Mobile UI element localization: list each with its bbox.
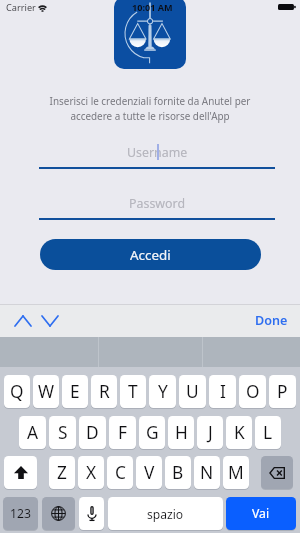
button[interactable]: J [197, 416, 223, 449]
button[interactable]: X [78, 456, 104, 489]
staticText: Accedi [130, 246, 171, 264]
staticText: S [58, 421, 68, 445]
button[interactable]: K [226, 416, 252, 449]
staticText: Password [129, 195, 186, 212]
staticText: Done [255, 312, 288, 329]
button[interactable]: T [120, 375, 146, 408]
staticText: J [208, 421, 213, 445]
staticText: C [115, 461, 126, 485]
button[interactable]: V [136, 456, 162, 489]
button[interactable]: N [194, 456, 220, 489]
button[interactable]: O [239, 375, 266, 408]
staticText: D [86, 421, 99, 445]
staticText: R [99, 380, 110, 404]
staticText: X [86, 461, 97, 485]
staticText: L [263, 421, 273, 445]
button[interactable]: W [33, 375, 59, 408]
button[interactable]: E [62, 375, 88, 408]
staticText: F [118, 421, 127, 445]
button[interactable]: L [255, 416, 281, 449]
button[interactable]: Next field [42, 316, 58, 326]
button[interactable]: U [179, 375, 206, 408]
staticText: Inserisci le credenziali fornite da Anut… [40, 94, 260, 122]
staticText: A [27, 421, 39, 445]
staticText: 123 [10, 505, 31, 522]
staticText: Username [127, 144, 188, 161]
staticText: Z [57, 461, 67, 485]
staticText: 10:01 AM [132, 1, 173, 13]
button[interactable]: I [209, 375, 236, 408]
staticText: V [144, 461, 155, 485]
button[interactable]: Vai [226, 497, 296, 530]
button[interactable]: Username [39, 145, 275, 167]
button[interactable]: Q [4, 375, 30, 408]
button[interactable]: F [109, 416, 136, 449]
staticText: I [220, 380, 226, 404]
button[interactable]: G [139, 416, 165, 449]
staticText: Q [10, 380, 24, 404]
staticText: N [200, 461, 214, 485]
staticText: Carrier [6, 1, 36, 14]
staticText: H [175, 421, 188, 445]
button[interactable]: Backspace [261, 456, 293, 489]
staticText: O [246, 380, 260, 404]
button[interactable]: R [91, 375, 117, 408]
staticText: U [186, 380, 199, 404]
button[interactable]: M [223, 456, 249, 489]
staticText: M [228, 461, 244, 485]
staticText: Vai [252, 505, 270, 522]
button[interactable]: Shift [4, 456, 37, 489]
staticText: E [70, 380, 80, 404]
button[interactable]: Done [255, 312, 288, 329]
staticText: Y [158, 380, 168, 404]
staticText: T [128, 380, 138, 404]
button[interactable]: P [269, 375, 296, 408]
button[interactable]: Change keyboard [42, 497, 75, 530]
button[interactable]: Accedi [40, 239, 261, 270]
staticText: W [38, 380, 55, 404]
button[interactable]: Z [49, 456, 75, 489]
button[interactable]: C [107, 456, 133, 489]
staticText: P [277, 380, 288, 404]
button[interactable]: Password [39, 196, 275, 218]
button[interactable]: Y [149, 375, 176, 408]
staticText: K [234, 421, 245, 445]
button[interactable]: A [19, 416, 46, 449]
button[interactable]: 123 [3, 497, 38, 530]
button[interactable]: Previous field [15, 316, 31, 326]
button[interactable]: H [168, 416, 194, 449]
button[interactable]: D [79, 416, 106, 449]
staticText: B [172, 461, 184, 485]
staticText: spazio [147, 506, 184, 522]
staticText: G [146, 421, 159, 445]
button[interactable]: Dictation [79, 497, 104, 530]
button[interactable]: spazio [108, 497, 223, 530]
button[interactable]: B [165, 456, 191, 489]
button[interactable]: S [49, 416, 76, 449]
